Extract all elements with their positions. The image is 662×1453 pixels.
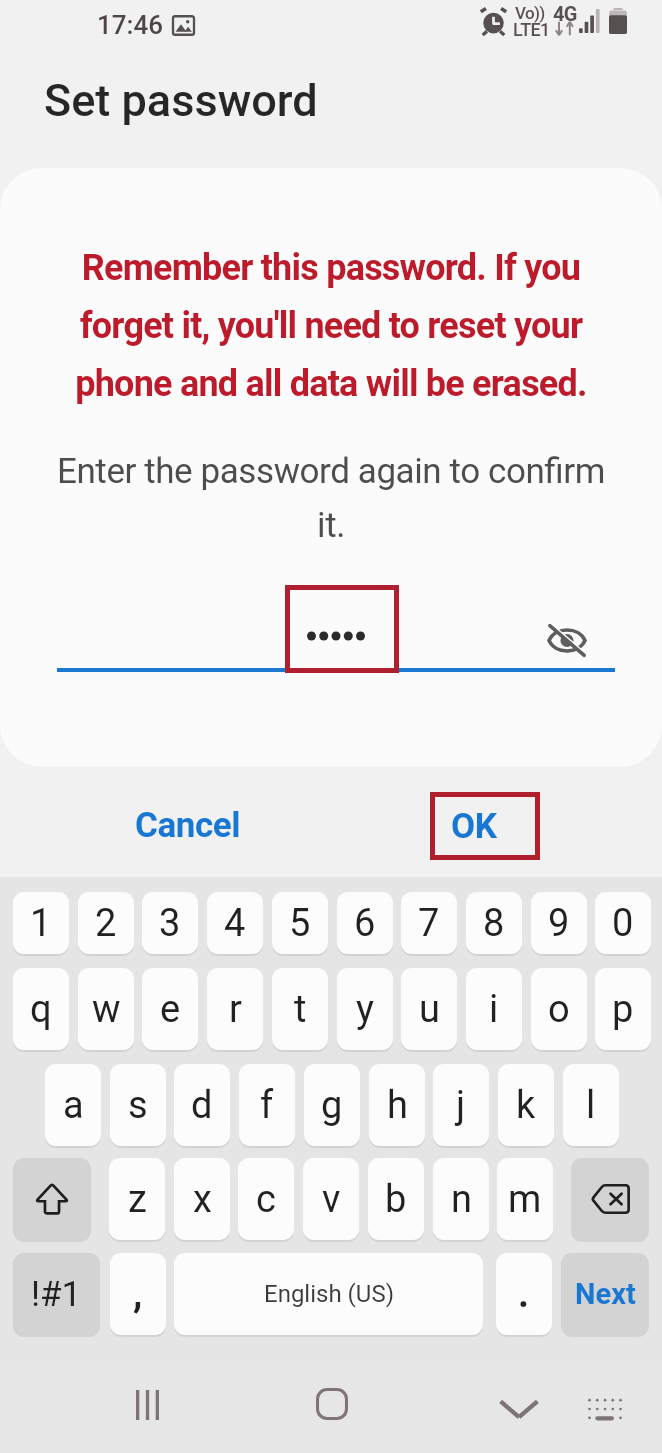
button[interactable]: 6 [337, 892, 393, 954]
button[interactable]: p [595, 968, 651, 1050]
staticText: i [489, 987, 499, 1032]
button[interactable]: k [498, 1064, 554, 1146]
button[interactable]: b [368, 1158, 424, 1240]
staticText: z [128, 1177, 147, 1222]
staticText: 4G [553, 2, 577, 25]
button[interactable]: 2 [78, 892, 134, 954]
staticText: OK [451, 806, 497, 847]
button[interactable]: w [78, 968, 134, 1050]
staticText: p [612, 987, 634, 1032]
staticText: Remember this password. If you forget it… [48, 247, 614, 405]
button[interactable]: e [142, 968, 198, 1050]
staticText: !#1 [31, 1274, 82, 1315]
button[interactable]: 5 [272, 892, 328, 954]
staticText: j [456, 1083, 466, 1128]
staticText: x [193, 1177, 212, 1222]
button[interactable]: !#1 [13, 1253, 100, 1335]
button[interactable]: . [496, 1253, 552, 1335]
staticText: m [508, 1177, 542, 1222]
button[interactable]: Shift [13, 1158, 91, 1240]
button[interactable]: h [369, 1064, 425, 1146]
staticText: e [160, 987, 181, 1032]
button[interactable]: 7 [401, 892, 457, 954]
button[interactable]: Recents [109, 1367, 185, 1443]
staticText: 7 [418, 901, 440, 946]
staticText: 2 [95, 901, 117, 946]
button[interactable]: q [13, 968, 69, 1050]
staticText: Cancel [135, 805, 241, 846]
button[interactable]: t [272, 968, 328, 1050]
staticText: Next [575, 1277, 636, 1311]
button[interactable]: Show password [536, 609, 598, 671]
button[interactable]: c [238, 1158, 294, 1240]
staticText: 5 [289, 901, 311, 946]
button[interactable]: g [304, 1064, 360, 1146]
button[interactable]: 1 [13, 892, 69, 954]
staticText: q [30, 987, 52, 1032]
staticText: Enter the password again to confirm it. [40, 451, 622, 546]
button[interactable]: i [466, 968, 522, 1050]
button[interactable]: d [174, 1064, 230, 1146]
staticText: t [294, 987, 307, 1032]
staticText: f [260, 1083, 274, 1128]
button[interactable]: f [239, 1064, 295, 1146]
staticText: 6 [354, 901, 376, 946]
button[interactable]: a [45, 1064, 101, 1146]
staticText: y [356, 987, 374, 1032]
button[interactable]: Home [294, 1366, 370, 1442]
staticText: l [586, 1083, 596, 1128]
button[interactable]: x [174, 1158, 230, 1240]
button[interactable]: n [433, 1158, 489, 1240]
staticText: r [229, 987, 242, 1032]
button[interactable]: , [110, 1253, 166, 1335]
staticText: 3 [159, 901, 181, 946]
button[interactable]: Hide keyboard [481, 1371, 557, 1447]
button[interactable]: Backspace [571, 1158, 649, 1240]
button[interactable]: Next [561, 1253, 649, 1335]
button[interactable]: v [303, 1158, 359, 1240]
button[interactable]: y [337, 968, 393, 1050]
staticText: o [548, 987, 570, 1032]
staticText: s [128, 1083, 148, 1128]
staticText: w [92, 987, 121, 1032]
staticText: English (US) [264, 1280, 394, 1308]
button[interactable]: OK [430, 792, 540, 860]
staticText: u [419, 987, 440, 1032]
staticText: , [133, 1272, 143, 1317]
button[interactable]: 3 [142, 892, 198, 954]
button[interactable]: u [401, 968, 457, 1050]
button[interactable]: o [531, 968, 587, 1050]
staticText: d [191, 1083, 213, 1128]
button[interactable]: 8 [466, 892, 522, 954]
staticText: Set password [44, 74, 318, 127]
button[interactable]: 9 [531, 892, 587, 954]
button[interactable]: Cancel [110, 788, 266, 862]
button[interactable]: m [497, 1158, 553, 1240]
staticText: 9 [548, 901, 570, 946]
staticText: 0 [612, 901, 634, 946]
button[interactable]: s [110, 1064, 166, 1146]
button[interactable]: 0 [595, 892, 651, 954]
button[interactable]: Switch keyboard [567, 1371, 643, 1447]
button[interactable]: z [109, 1158, 165, 1240]
staticText: h [387, 1083, 408, 1128]
button[interactable]: l [563, 1064, 619, 1146]
staticText: . [518, 1272, 530, 1317]
staticText: g [321, 1083, 343, 1128]
staticText: 4 [224, 901, 246, 946]
staticText: b [385, 1177, 407, 1222]
staticText: k [516, 1083, 536, 1128]
button[interactable]: 4 [207, 892, 263, 954]
staticText: a [63, 1083, 84, 1128]
button[interactable]: English (US) [174, 1253, 483, 1335]
button[interactable]: r [207, 968, 263, 1050]
staticText: c [256, 1177, 276, 1222]
staticText: 17:46 [97, 10, 164, 40]
staticText: v [322, 1177, 341, 1222]
button[interactable]: j [433, 1064, 489, 1146]
staticText: LTE1 [513, 19, 550, 40]
staticText: 1 [30, 901, 52, 946]
staticText: Vo)) [515, 3, 545, 23]
staticText: n [451, 1177, 472, 1222]
staticText: 8 [483, 901, 505, 946]
